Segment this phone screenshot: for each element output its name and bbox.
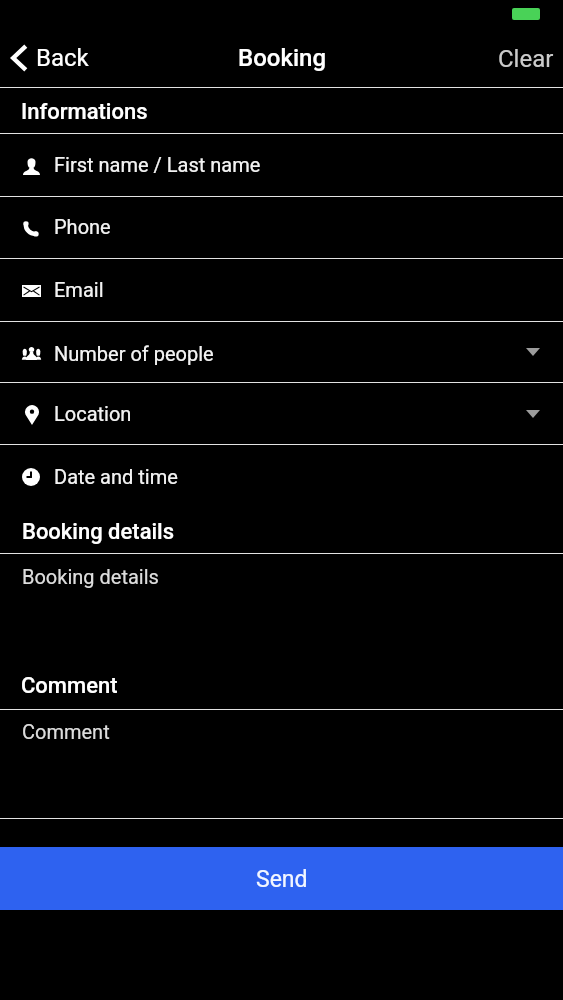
button[interactable]: Email [0,259,563,321]
staticText: Comment [22,720,110,743]
staticText: Date and time [54,465,178,488]
staticText: Back [36,44,89,72]
other: Person [23,157,40,175]
button[interactable]: Location [0,383,563,444]
button[interactable]: Date and time [0,445,563,507]
staticText: Send [256,866,308,893]
button[interactable]: Booking details [0,554,563,665]
staticText: Clear [498,45,554,73]
other: Phone [23,221,39,237]
staticText: First name / Last name [54,153,261,176]
button[interactable]: Clear [484,36,563,79]
staticText: Phone [54,215,111,238]
staticText: Informations [21,99,148,125]
other: People [22,346,41,360]
button[interactable]: People [0,322,563,382]
button[interactable]: Phone [0,197,563,258]
staticText: Email [54,278,104,301]
staticText: Comment [21,673,118,699]
staticText: Booking details [22,565,159,588]
staticText: Location [54,402,132,425]
button[interactable]: Send [0,847,563,910]
button[interactable]: Back [0,36,89,79]
staticText: Number of people [54,342,214,365]
other: Email [22,285,41,297]
other: Date and time [22,468,40,486]
button[interactable]: Comment [0,710,563,818]
other: Location [25,405,39,425]
staticText: Booking [238,44,326,72]
button[interactable]: Person [0,134,563,196]
staticText: Booking details [22,519,175,545]
